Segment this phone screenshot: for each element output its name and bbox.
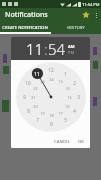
staticText: 2 — [73, 80, 76, 86]
staticText: 9 — [23, 94, 26, 100]
button[interactable]: AM — [68, 44, 75, 49]
staticText: 15 — [67, 95, 72, 100]
button[interactable]: More options — [92, 8, 101, 22]
staticText: 18 — [49, 113, 54, 118]
staticText: 22 — [33, 86, 38, 91]
button[interactable]: CANCEL — [51, 137, 73, 147]
button[interactable]: CREATE NOTIFICATION — [0, 22, 50, 34]
staticText: 5 — [64, 117, 67, 123]
staticText: 17 — [58, 111, 63, 116]
button[interactable]: Favorite — [79, 8, 92, 22]
staticText: PM — [68, 50, 75, 55]
staticText: 10 — [25, 80, 31, 86]
staticText: 21 — [31, 95, 36, 100]
button[interactable]: 54 — [48, 39, 66, 59]
button[interactable]: OK — [75, 137, 87, 147]
staticText: 24 — [49, 77, 54, 82]
staticText: 11 — [26, 39, 44, 59]
staticText: CANCEL — [54, 139, 70, 145]
staticText: 16 — [65, 104, 70, 109]
staticText: 23 — [40, 79, 45, 84]
staticText: 11 — [34, 71, 40, 77]
staticText: 12 — [48, 67, 54, 73]
staticText: CREATE NOTIFICATION — [2, 25, 48, 31]
staticText: 4 — [73, 108, 76, 114]
button[interactable]: HISTORY — [50, 22, 101, 34]
button[interactable]: 11 — [26, 39, 44, 59]
staticText: 14 — [65, 86, 70, 91]
staticText: 20 — [33, 104, 38, 109]
staticText: AM — [68, 44, 75, 49]
staticText: 3 — [77, 94, 80, 100]
staticText: 13 — [58, 79, 63, 84]
staticText: 6 — [50, 121, 53, 127]
button[interactable]: Select hour — [16, 62, 86, 132]
staticText: 7 — [36, 117, 39, 123]
staticText: 11:54 PM — [82, 2, 100, 7]
staticText: 8 — [27, 108, 30, 114]
staticText: 19 — [40, 111, 45, 116]
staticText: OK — [78, 139, 84, 145]
staticText: 1 — [64, 71, 67, 77]
staticText: 54 — [48, 39, 66, 59]
staticText: Notifications — [5, 10, 48, 20]
button[interactable]: PM — [68, 50, 75, 55]
staticText: : — [44, 39, 48, 59]
staticText: HISTORY — [67, 25, 85, 31]
